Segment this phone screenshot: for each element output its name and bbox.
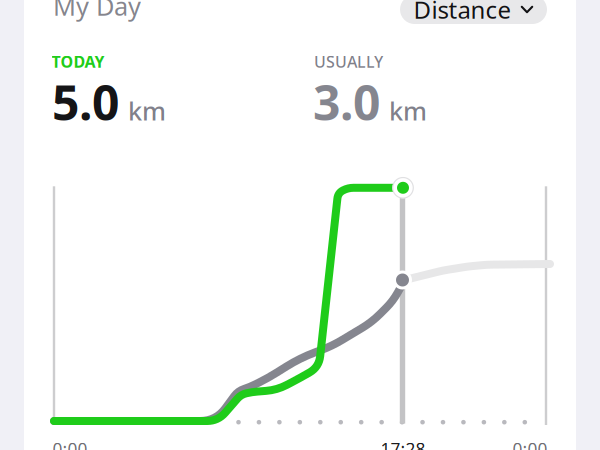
staticText: USUALLY	[314, 51, 383, 72]
staticText: km	[389, 94, 427, 128]
staticText: 5.0	[52, 70, 119, 134]
staticText: 17:28	[380, 437, 425, 450]
staticText: TODAY	[51, 51, 104, 72]
staticText: My Day	[53, 0, 141, 23]
staticText: Distance	[413, 0, 511, 25]
staticText: 0:00	[52, 437, 87, 450]
staticText: km	[128, 94, 166, 128]
staticText: 3.0	[313, 70, 380, 134]
button[interactable]: Distance	[400, 0, 547, 24]
staticText: 0:00	[512, 437, 547, 450]
